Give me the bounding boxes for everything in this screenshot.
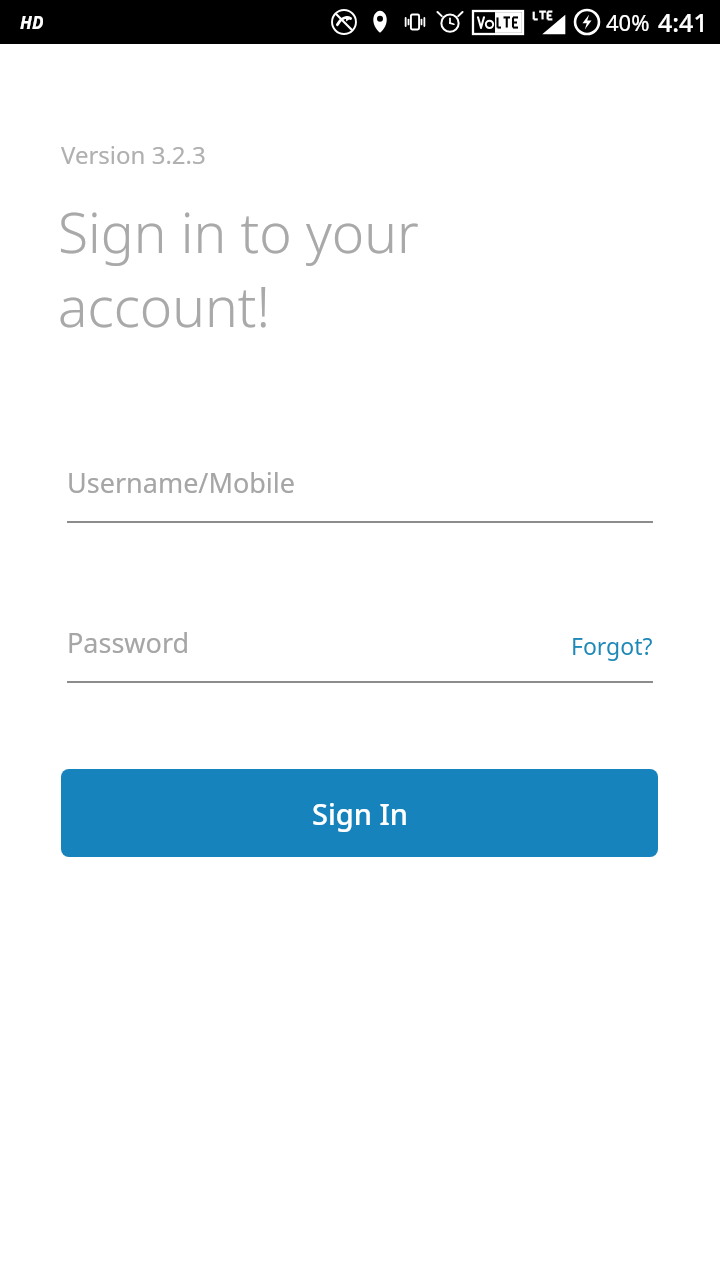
staticText: HD <box>20 11 44 34</box>
button[interactable]: Username/Mobile <box>67 464 653 523</box>
staticText: Forgot? <box>571 630 653 661</box>
staticText: Password <box>67 624 190 661</box>
staticText: 40% <box>606 7 650 37</box>
staticText: Sign In <box>312 794 408 833</box>
staticText: 4:41 <box>658 5 708 39</box>
staticText: Username/Mobile <box>67 464 295 501</box>
button[interactable]: Sign In <box>61 769 658 857</box>
staticText: Sign in to your account! <box>58 194 518 343</box>
staticText: Version 3.2.3 <box>61 138 206 171</box>
button[interactable]: Forgot? <box>563 630 653 661</box>
button[interactable]: Password <box>67 624 563 661</box>
